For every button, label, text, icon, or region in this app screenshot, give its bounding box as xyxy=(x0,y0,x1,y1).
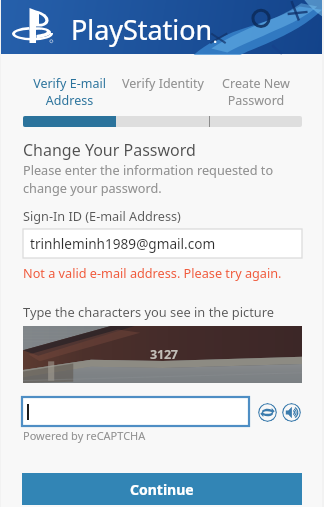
button[interactable]: trinhleminh1989@gmail.com xyxy=(23,229,302,258)
staticText: . xyxy=(213,26,218,48)
staticText: Sign-In ID (E-mail Address) xyxy=(23,207,181,224)
button[interactable]: Verify Identity xyxy=(116,75,209,92)
button[interactable]: Create New Password xyxy=(209,75,302,109)
button[interactable]: Continue xyxy=(22,473,302,505)
button[interactable] xyxy=(22,397,249,426)
staticText: trinhleminh1989@gmail.com xyxy=(30,234,216,253)
staticText: Change Your Password xyxy=(23,139,196,161)
staticText: Create New Password xyxy=(222,75,290,109)
button[interactable]: PlayStation xyxy=(1,0,322,54)
button[interactable]: Get a new challenge xyxy=(258,403,277,422)
staticText: Please enter the information requested t… xyxy=(23,161,274,197)
staticText: 3127 xyxy=(150,346,178,363)
staticText: PlayStation xyxy=(71,11,213,48)
staticText: Verify E-mail Address xyxy=(33,75,106,109)
staticText: Powered by reCAPTCHA xyxy=(23,428,146,443)
button[interactable]: Get an audio challenge xyxy=(282,403,301,422)
staticText: Continue xyxy=(130,480,194,499)
button[interactable]: Verify E-mail Address xyxy=(23,75,116,109)
staticText: Verify Identity xyxy=(122,75,204,92)
staticText: Not a valid e-mail address. Please try a… xyxy=(23,264,282,281)
staticText: Type the characters you see in the pictu… xyxy=(23,303,275,321)
